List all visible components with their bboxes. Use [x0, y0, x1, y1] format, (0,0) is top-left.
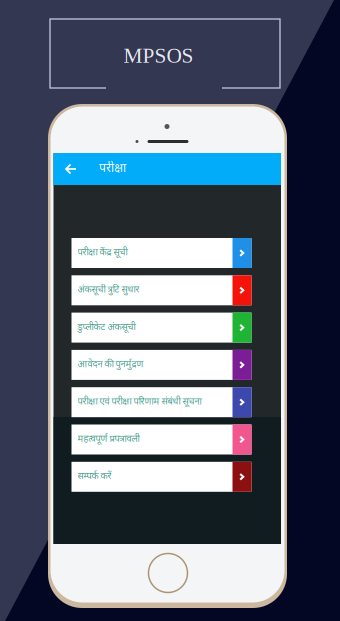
button[interactable]: महत्वपूर्ण प्रपत्रावली: [71, 424, 251, 454]
staticText: MPSOS: [123, 44, 193, 67]
staticText: महत्वपूर्ण प्रपत्रावली: [77, 433, 139, 446]
staticText: परीक्षा केंद्र सूची: [77, 247, 127, 259]
button[interactable]: आवेदन की पुनर्मुद्रण: [71, 350, 251, 380]
button[interactable]: डुप्लीकेट अंकसूची: [71, 313, 251, 343]
staticText: आवेदन की पुनर्मुद्रण: [77, 359, 143, 371]
staticText: परीक्षा: [99, 161, 126, 177]
button[interactable]: परीक्षा केंद्र सूची: [71, 238, 251, 268]
staticText: परीक्षा एवं परीक्षा परिणाम संबंधी सूचना: [77, 396, 201, 408]
button[interactable]: Back: [53, 153, 99, 185]
button[interactable]: सम्पर्क करें: [71, 462, 251, 492]
button[interactable]: परीक्षा एवं परीक्षा परिणाम संबंधी सूचना: [71, 387, 251, 417]
staticText: डुप्लीकेट अंकसूची: [77, 321, 135, 334]
button[interactable]: अंकसूची त्रुटि सुधार: [71, 275, 251, 305]
staticText: सम्पर्क करें: [77, 471, 111, 483]
staticText: अंकसूची त्रुटि सुधार: [77, 284, 139, 296]
